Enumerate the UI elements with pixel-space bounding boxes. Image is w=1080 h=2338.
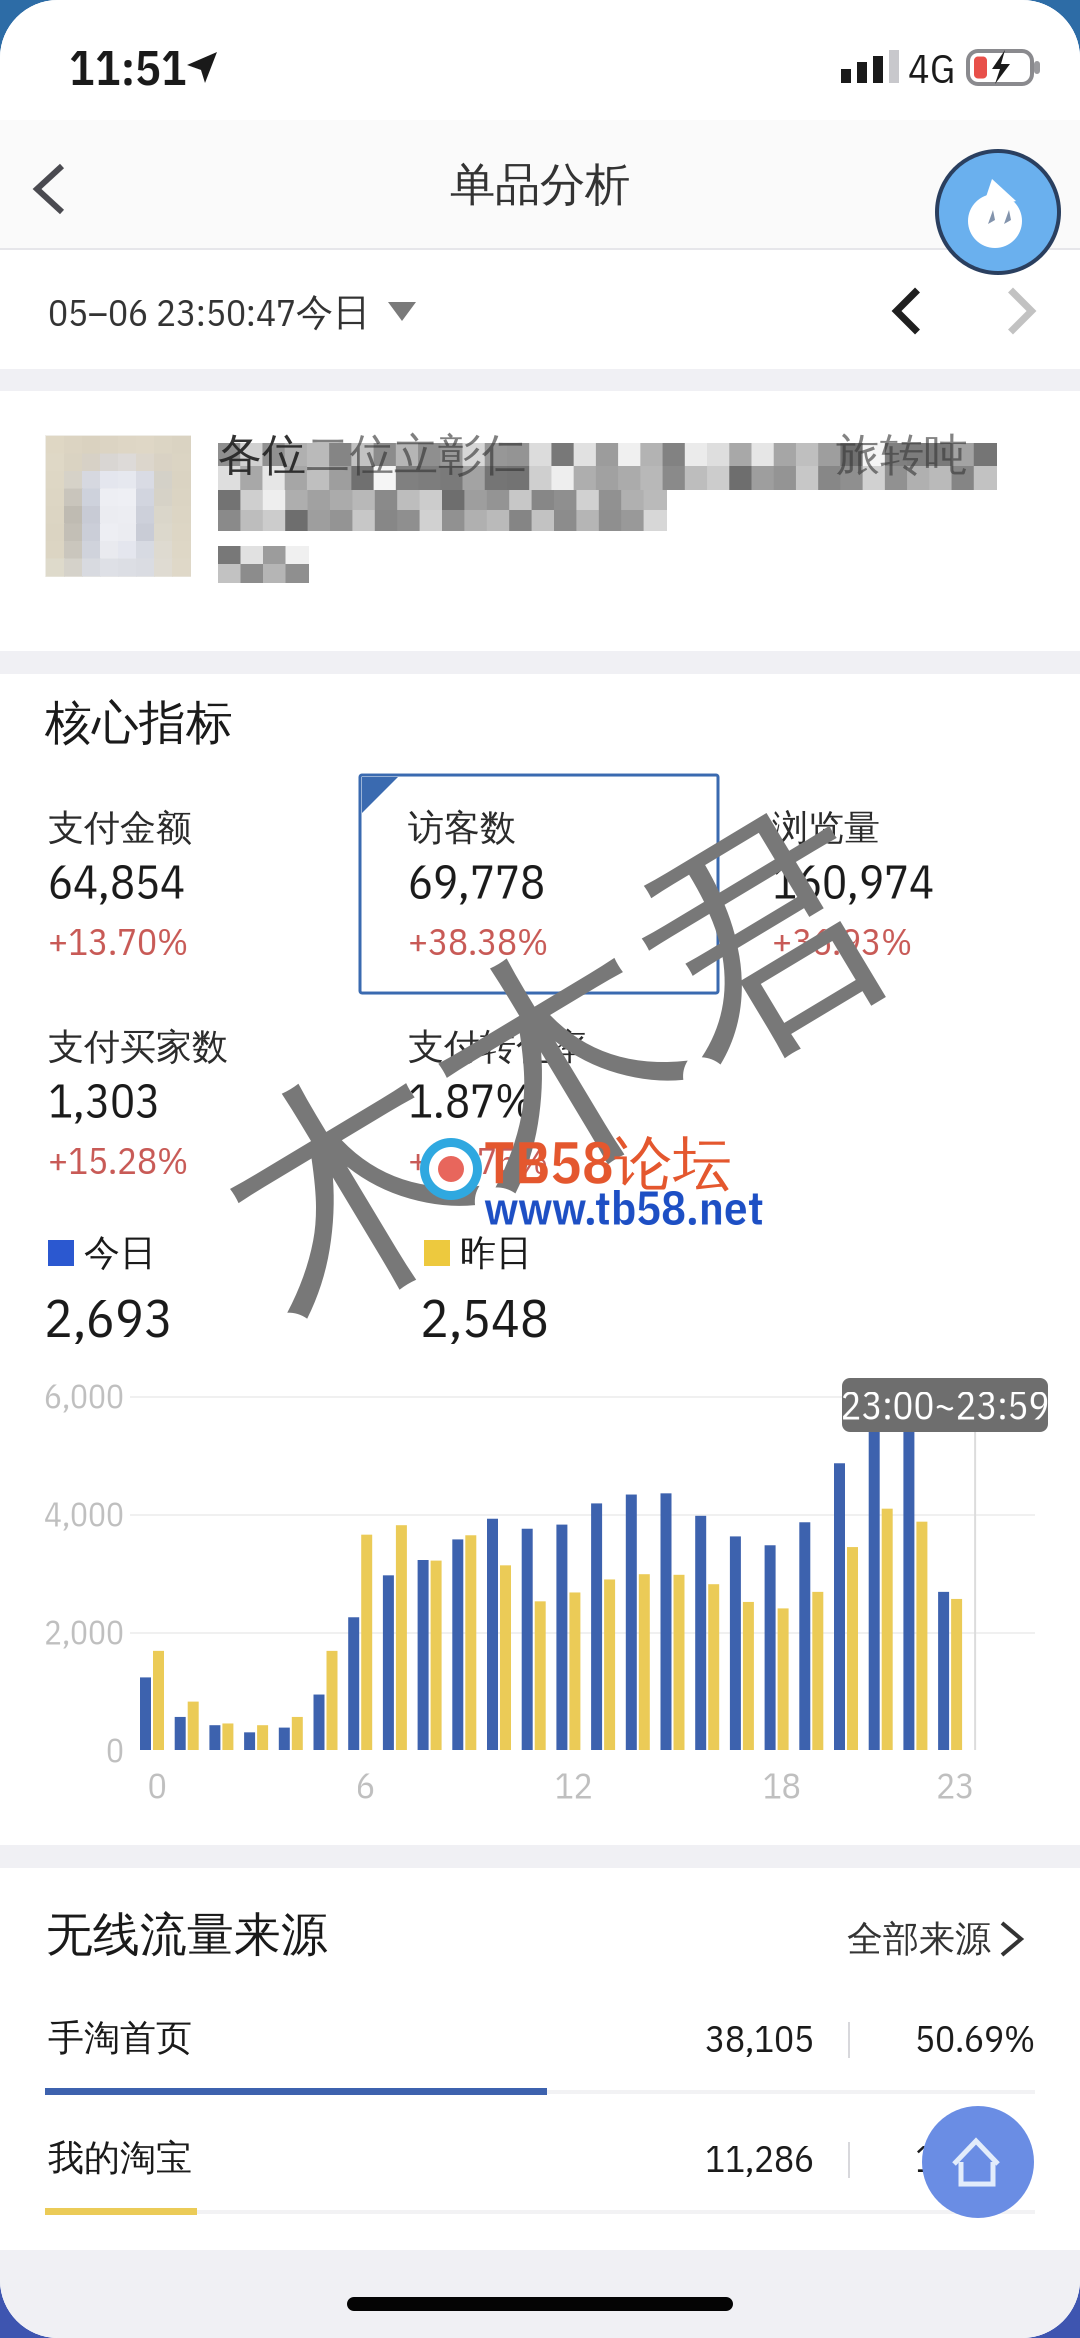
staticText: 2,000 <box>44 1610 124 1654</box>
button[interactable]: 返回 <box>0 120 110 250</box>
staticText: 昨日 <box>460 1230 532 1276</box>
staticText: 今日 <box>84 1230 156 1276</box>
staticText: 05–06 23:50:47今日 <box>48 288 370 336</box>
button[interactable]: 首页 <box>922 2106 1034 2218</box>
staticText: 手淘首页 <box>48 2015 192 2061</box>
staticText: 2,548 <box>420 1282 549 1352</box>
staticText: 50.69% <box>915 2014 1035 2062</box>
staticText: +38.38% <box>408 917 548 965</box>
staticText: 二位立彰仁 <box>306 427 526 483</box>
staticText: 23:00~23:59 <box>840 1380 1049 1430</box>
staticText: 我的淘宝 <box>48 2135 192 2181</box>
staticText: +15.28% <box>48 1136 188 1184</box>
staticText: 1.87% <box>408 1070 534 1130</box>
button[interactable]: 上一天 <box>860 252 956 370</box>
staticText: +13.70% <box>48 917 188 965</box>
button[interactable]: 手淘首页 <box>0 1998 1080 2110</box>
button[interactable]: 全部来源 <box>810 1888 1070 1968</box>
staticText: 2,693 <box>44 1282 173 1352</box>
button[interactable]: 智能助手 <box>935 149 1061 275</box>
staticText: 1,303 <box>48 1070 160 1130</box>
staticText: 23 <box>936 1762 974 1808</box>
staticText: 4G <box>908 42 955 94</box>
staticText: TB58论坛 <box>484 1123 732 1201</box>
staticText: 6,000 <box>44 1374 124 1418</box>
staticText: 支付转化率 <box>408 1024 588 1070</box>
staticText: www.tb58.net <box>484 1177 764 1237</box>
staticText: 浏览量 <box>772 805 880 851</box>
staticText: 访客数 <box>408 805 516 851</box>
staticText: 6 <box>356 1762 375 1808</box>
staticText: 旅转吨 <box>836 427 968 483</box>
staticText: 支付买家数 <box>48 1024 228 1070</box>
staticText: 4,000 <box>44 1492 124 1536</box>
staticText: 木木君 <box>195 912 924 1218</box>
staticText: 15.01% <box>915 2134 1035 2182</box>
staticText: 160,974 <box>772 851 934 911</box>
button[interactable]: 我的淘宝 <box>0 2118 1080 2230</box>
staticText: 核心指标 <box>45 694 233 752</box>
staticText: 69,778 <box>408 851 545 911</box>
button[interactable]: 05–06 23:50:47今日 <box>0 252 600 370</box>
staticText: 38,105 <box>705 2014 814 2062</box>
staticText: +35.75% <box>408 1136 548 1184</box>
button[interactable]: 下一天 <box>974 252 1070 370</box>
staticText: 全部来源 <box>847 1916 991 1962</box>
staticText: 11:51 <box>69 36 187 98</box>
staticText: 64,854 <box>48 851 185 911</box>
staticText: +36.93% <box>772 917 912 965</box>
staticText: 12 <box>554 1762 592 1808</box>
staticText: 0 <box>106 1728 124 1772</box>
staticText: 11,286 <box>705 2134 814 2182</box>
staticText: 支付金额 <box>48 805 192 851</box>
staticText: 无线流量来源 <box>46 1906 328 1964</box>
staticText: 单品分析 <box>450 156 630 213</box>
staticText: 各位 <box>218 427 306 483</box>
staticText: 0 <box>147 1762 166 1808</box>
staticText: 18 <box>763 1762 801 1808</box>
